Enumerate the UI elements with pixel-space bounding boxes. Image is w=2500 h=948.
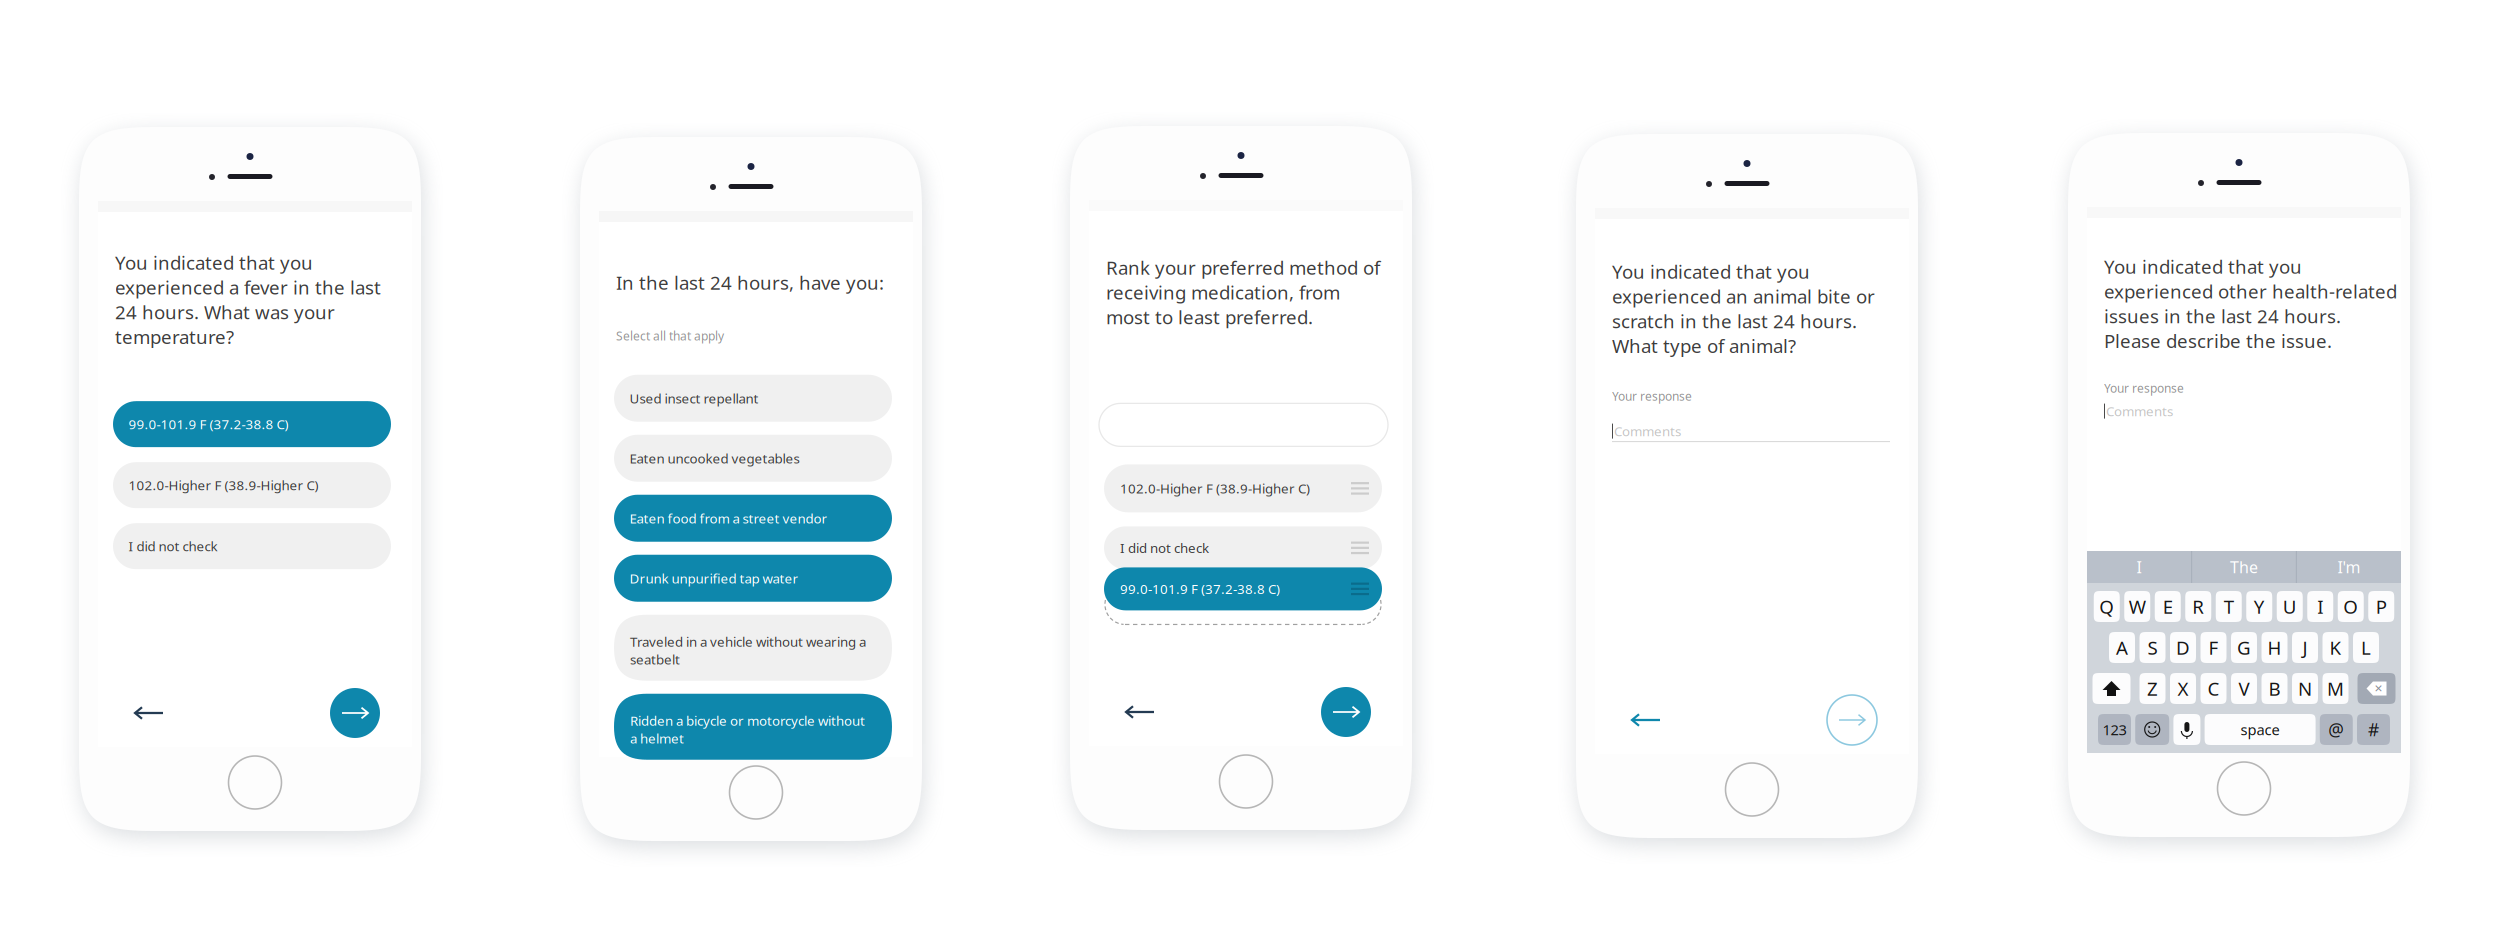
button[interactable]: W bbox=[2124, 591, 2150, 622]
staticText: C bbox=[2207, 676, 2219, 701]
button[interactable]: Q bbox=[2094, 591, 2120, 622]
button[interactable]: Shift bbox=[2092, 673, 2130, 704]
staticText: A bbox=[2116, 635, 2128, 660]
staticText: 102.0-Higher F (38.9-Higher C) bbox=[128, 476, 318, 494]
button[interactable]: M bbox=[2322, 673, 2348, 704]
staticText: V bbox=[2238, 676, 2249, 701]
staticText: You indicated that you experienced a fev… bbox=[115, 250, 381, 349]
button[interactable]: space bbox=[2205, 714, 2316, 745]
button[interactable]: E bbox=[2155, 591, 2181, 622]
staticText: D bbox=[2176, 635, 2190, 660]
staticText: N bbox=[2298, 676, 2312, 701]
staticText: I bbox=[2317, 594, 2323, 619]
button[interactable]: # bbox=[2357, 714, 2390, 745]
button[interactable]: F bbox=[2200, 632, 2226, 663]
button[interactable]: Next bbox=[1827, 695, 1877, 745]
button[interactable]: @ bbox=[2320, 714, 2353, 745]
staticText: H bbox=[2267, 635, 2281, 660]
staticText: 123 bbox=[2102, 720, 2126, 739]
staticText: You indicated that you experienced other… bbox=[2104, 254, 2397, 353]
button[interactable]: U bbox=[2277, 591, 2303, 622]
staticText: 102.0-Higher F (38.9-Higher C) bbox=[1120, 479, 1310, 497]
button[interactable]: 99.0-101.9 F (37.2-38.8 C) bbox=[113, 401, 391, 447]
button[interactable]: I'm bbox=[2297, 551, 2401, 583]
staticText: G bbox=[2237, 635, 2251, 660]
button[interactable]: I did not check bbox=[1104, 526, 1382, 569]
button[interactable]: I bbox=[2307, 591, 2333, 622]
button[interactable]: B bbox=[2261, 673, 2287, 704]
button[interactable]: 102.0-Higher F (38.9-Higher C) bbox=[113, 462, 391, 508]
staticText: S bbox=[2147, 635, 2157, 660]
button[interactable]: Delete bbox=[2357, 673, 2395, 704]
staticText: space bbox=[2241, 720, 2280, 739]
button[interactable]: Next bbox=[330, 688, 380, 738]
button[interactable]: Eaten food from a street vendor bbox=[614, 495, 892, 542]
button[interactable]: 123 bbox=[2098, 714, 2131, 745]
staticText: U bbox=[2283, 594, 2297, 619]
staticText: I did not check bbox=[1120, 539, 1209, 557]
staticText: @ bbox=[2328, 718, 2344, 741]
button[interactable]: 102.0-Higher F (38.9-Higher C) bbox=[1104, 464, 1382, 512]
staticText: Comments bbox=[1614, 422, 1681, 440]
button[interactable]: K bbox=[2322, 632, 2348, 663]
button[interactable]: Drunk unpurified tap water bbox=[614, 555, 892, 602]
staticText: X bbox=[2177, 676, 2188, 701]
button[interactable]: Back bbox=[124, 688, 174, 738]
button[interactable]: G bbox=[2231, 632, 2257, 663]
staticText: Drunk unpurified tap water bbox=[629, 569, 798, 587]
button[interactable]: T bbox=[2216, 591, 2242, 622]
button[interactable]: Back bbox=[1621, 695, 1671, 745]
button[interactable]: V bbox=[2231, 673, 2257, 704]
staticText: I did not check bbox=[128, 537, 217, 555]
button[interactable]: I did not check bbox=[113, 523, 391, 569]
button[interactable]: Z bbox=[2139, 673, 2165, 704]
button[interactable]: H bbox=[2261, 632, 2287, 663]
staticText: Used insect repellant bbox=[629, 389, 758, 407]
staticText: J bbox=[2302, 635, 2307, 660]
button[interactable]: X bbox=[2170, 673, 2196, 704]
staticText: Comments bbox=[2106, 402, 2173, 420]
button[interactable]: Back bbox=[1115, 687, 1165, 737]
button[interactable]: The bbox=[2192, 551, 2296, 583]
button[interactable]: L bbox=[2353, 632, 2379, 663]
staticText: I bbox=[2137, 556, 2142, 578]
button[interactable]: Next bbox=[1321, 687, 1371, 737]
button[interactable]: Emoji bbox=[2135, 714, 2169, 745]
staticText: T bbox=[2224, 594, 2234, 619]
button[interactable]: Traveled in a vehicle without wearing a … bbox=[614, 615, 892, 681]
button[interactable]: Ridden a bicycle or motorcycle without a… bbox=[614, 694, 892, 760]
staticText: 99.0-101.9 F (37.2-38.8 C) bbox=[1120, 580, 1280, 598]
button[interactable]: Eaten uncooked vegetables bbox=[614, 435, 892, 482]
button[interactable]: 99.0-101.9 F (37.2-38.8 C) bbox=[1104, 567, 1382, 610]
staticText: O bbox=[2343, 594, 2358, 619]
button[interactable]: P bbox=[2368, 591, 2394, 622]
staticText: Your response bbox=[1612, 388, 1692, 404]
staticText: Ridden a bicycle or motorcycle without a… bbox=[630, 712, 865, 747]
button[interactable]: I bbox=[2087, 551, 2191, 583]
staticText: R bbox=[2192, 594, 2204, 619]
staticText: F bbox=[2208, 635, 2218, 660]
button[interactable]: Dictate bbox=[2173, 714, 2200, 745]
button[interactable]: R bbox=[2185, 591, 2211, 622]
staticText: W bbox=[2129, 594, 2146, 619]
button[interactable]: J bbox=[2292, 632, 2318, 663]
staticText: # bbox=[2368, 718, 2379, 741]
button[interactable]: C bbox=[2200, 673, 2226, 704]
button[interactable]: D bbox=[2170, 632, 2196, 663]
staticText: You indicated that you experienced an an… bbox=[1612, 259, 1875, 358]
button[interactable]: O bbox=[2338, 591, 2364, 622]
staticText: L bbox=[2361, 635, 2371, 660]
staticText: B bbox=[2268, 676, 2280, 701]
staticText: P bbox=[2376, 594, 2387, 619]
staticText: K bbox=[2329, 635, 2341, 660]
button[interactable]: Y bbox=[2246, 591, 2272, 622]
button[interactable]: Used insect repellant bbox=[614, 375, 892, 422]
button[interactable]: S bbox=[2139, 632, 2165, 663]
staticText: M bbox=[2327, 676, 2344, 701]
staticText: The bbox=[2230, 556, 2258, 578]
staticText: 99.0-101.9 F (37.2-38.8 C) bbox=[128, 415, 288, 433]
staticText: In the last 24 hours, have you: bbox=[616, 270, 884, 295]
button[interactable]: N bbox=[2292, 673, 2318, 704]
button[interactable]: A bbox=[2109, 632, 2135, 663]
staticText: ✕ bbox=[2374, 682, 2383, 694]
